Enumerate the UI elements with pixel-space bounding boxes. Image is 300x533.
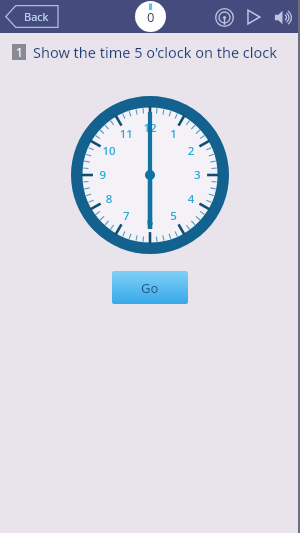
staticText: 0 [147,8,155,26]
staticText: Back [24,9,49,24]
staticText: Go [141,279,159,297]
staticText: Show the time 5 o'clock on the clock [33,42,278,62]
staticText: 1 [16,44,23,60]
button[interactable]: Back [5,5,59,28]
button[interactable]: Record [211,4,237,30]
button[interactable]: Sound [269,4,295,30]
button[interactable]: Play [240,4,266,30]
button[interactable]: Go [112,271,188,304]
